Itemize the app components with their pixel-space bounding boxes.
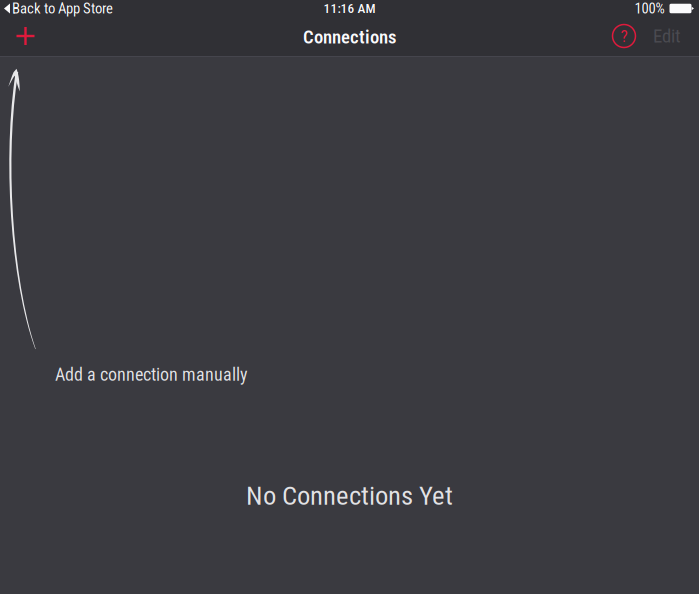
- button[interactable]: Edit: [644, 19, 690, 53]
- staticText: Back to App Store: [12, 0, 113, 17]
- staticText: Add a connection manually: [55, 364, 247, 385]
- staticText: 11:16 AM: [323, 1, 375, 16]
- staticText: No Connections Yet: [246, 480, 453, 511]
- staticText: 100%: [634, 0, 664, 17]
- staticText: Connections: [303, 26, 396, 48]
- button[interactable]: Back to App Store: [0, 0, 117, 17]
- button[interactable]: Add connection: [10, 21, 40, 51]
- staticText: ?: [620, 26, 627, 46]
- staticText: Edit: [653, 25, 681, 47]
- button[interactable]: Help: [609, 21, 639, 51]
